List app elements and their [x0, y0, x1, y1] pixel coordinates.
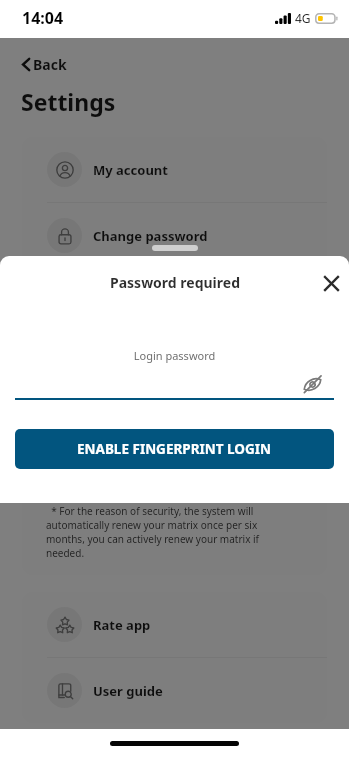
- button[interactable]: Transaction limit: [22, 401, 327, 466]
- staticText: Back: [33, 55, 67, 74]
- staticText: Transaction limit: [93, 425, 203, 443]
- button[interactable]: Close: [315, 267, 347, 299]
- staticText: Password required: [110, 273, 240, 292]
- staticText: Rate app: [93, 616, 151, 634]
- staticText: My account: [93, 161, 168, 179]
- staticText: User guide: [93, 682, 163, 700]
- button[interactable]: ENABLE FINGERPRINT LOGIN: [15, 429, 334, 469]
- staticText: Login password: [0, 348, 349, 363]
- button[interactable]: Matrix card: [22, 335, 327, 400]
- staticText: 14:04: [22, 7, 64, 29]
- button[interactable]: Change password: [22, 203, 327, 268]
- button[interactable]: Back: [21, 53, 67, 75]
- staticText: Settings: [21, 86, 116, 117]
- button[interactable]: User guide: [22, 658, 327, 723]
- staticText: 4G: [295, 10, 311, 26]
- staticText: * For the reason of security, the system…: [46, 504, 296, 560]
- staticText: Change password: [93, 227, 208, 245]
- button[interactable]: Rate app: [22, 592, 327, 657]
- button[interactable]: Fingerprint login: [22, 269, 327, 334]
- button[interactable]: Show password: [299, 371, 325, 397]
- staticText: ENABLE FINGERPRINT LOGIN: [77, 440, 272, 458]
- staticText: Matrix card: [93, 359, 168, 377]
- button[interactable]: My account: [22, 137, 327, 202]
